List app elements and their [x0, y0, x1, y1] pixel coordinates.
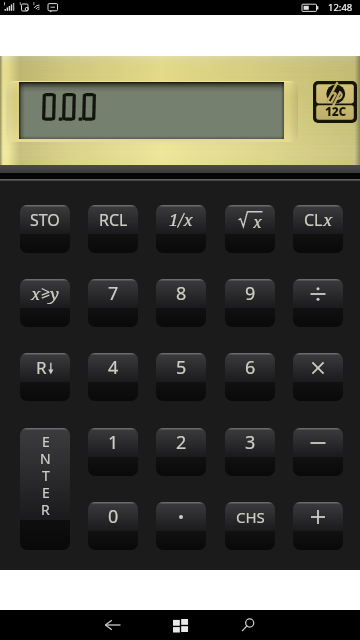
button[interactable]: CHS: [225, 502, 275, 550]
staticText: CHS: [236, 507, 265, 527]
button[interactable]: 1/x: [156, 205, 206, 253]
staticText: CL: [304, 209, 323, 231]
staticText: x: [253, 211, 262, 230]
button[interactable]: 9: [225, 279, 275, 327]
button[interactable]: [293, 279, 343, 327]
button[interactable]: 7: [88, 279, 138, 327]
button[interactable]: 0: [88, 502, 138, 550]
staticText: T: [42, 466, 50, 483]
staticText: RCL: [99, 209, 128, 231]
button[interactable]: 2: [156, 428, 206, 476]
staticText: 3: [245, 430, 256, 455]
staticText: x: [323, 208, 333, 231]
staticText: R: [41, 500, 50, 517]
button[interactable]: Search: [214, 610, 282, 640]
staticText: R: [36, 356, 47, 379]
button[interactable]: x: [225, 205, 275, 253]
staticText: 12:48: [328, 1, 353, 14]
staticText: 8: [176, 281, 187, 306]
staticText: 12C: [325, 103, 346, 119]
staticText: 7: [108, 281, 119, 306]
button[interactable]: 3: [225, 428, 275, 476]
button[interactable]: STO: [20, 205, 70, 253]
staticText: N: [40, 449, 51, 466]
staticText: 4: [108, 355, 119, 380]
staticText: E: [42, 432, 50, 449]
staticText: 1/x: [169, 208, 193, 231]
button[interactable]: 8: [156, 279, 206, 327]
button[interactable]: [293, 502, 343, 550]
button[interactable]: 4: [88, 353, 138, 401]
button[interactable]: x: [20, 279, 70, 327]
button[interactable]: CL: [293, 205, 343, 253]
staticText: STO: [30, 209, 60, 231]
staticText: 9: [245, 281, 256, 306]
staticText: E: [42, 483, 50, 500]
staticText: 2: [176, 430, 187, 455]
staticText: x: [31, 282, 41, 305]
button[interactable]: 6: [225, 353, 275, 401]
button[interactable]: [156, 502, 206, 550]
staticText: 0: [108, 504, 119, 529]
staticText: 6: [245, 355, 256, 380]
button[interactable]: R: [20, 353, 70, 401]
button[interactable]: Start: [146, 610, 214, 640]
button[interactable]: 1: [88, 428, 138, 476]
button[interactable]: Back: [78, 610, 146, 640]
button[interactable]: 5: [156, 353, 206, 401]
staticText: y: [50, 282, 59, 305]
staticText: 1: [108, 430, 119, 455]
button[interactable]: RCL: [88, 205, 138, 253]
button[interactable]: [293, 353, 343, 401]
staticText: 5: [176, 355, 187, 380]
button[interactable]: [293, 428, 343, 476]
button[interactable]: E: [20, 428, 70, 550]
